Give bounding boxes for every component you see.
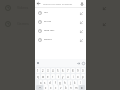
button[interactable]: q: [36, 74, 40, 79]
button[interactable]: m: [74, 85, 78, 90]
button[interactable]: Games: [0, 19, 120, 28]
button[interactable]: Shift: [36, 85, 43, 90]
button[interactable]: Settings: [81, 61, 85, 65]
staticText: p: [82, 75, 84, 79]
staticText: 1: [37, 69, 39, 73]
staticText: c: [55, 86, 57, 90]
button[interactable]: 2: [41, 68, 45, 73]
staticText: v: [60, 86, 62, 90]
button[interactable]: gamers: [35, 35, 86, 44]
button[interactable]: k: [73, 80, 77, 85]
staticText: dead cells: [44, 29, 77, 32]
button[interactable]: l: [78, 80, 82, 85]
button[interactable]: a: [39, 80, 42, 85]
staticText: a: [40, 81, 42, 85]
staticText: u: [67, 75, 69, 79]
staticText: g: [59, 81, 61, 85]
staticText: i: [73, 75, 74, 79]
button[interactable]: e: [46, 74, 50, 79]
staticText: ps2 iso: [44, 20, 77, 23]
button[interactable]: y: [61, 74, 65, 79]
button[interactable]: d: [48, 80, 52, 85]
button[interactable]: g: [58, 80, 62, 85]
staticText: o: [77, 75, 79, 79]
button[interactable]: 9: [76, 68, 80, 73]
button[interactable]: Insert query: [77, 9, 85, 17]
staticText: Videos: [17, 5, 100, 10]
button[interactable]: Insert query: [100, 20, 108, 28]
staticText: b: [65, 86, 67, 90]
staticText: 5: [57, 69, 59, 73]
button[interactable]: i: [71, 74, 75, 79]
button[interactable]: z: [44, 85, 48, 90]
button[interactable]: w: [41, 74, 45, 79]
button[interactable]: v: [59, 85, 63, 90]
button[interactable]: 7: [66, 68, 70, 73]
staticText: q: [37, 75, 39, 79]
staticText: r: [52, 75, 54, 79]
button[interactable]: Videos: [0, 3, 120, 12]
button[interactable]: Insert query: [77, 18, 85, 26]
button[interactable]: 1: [36, 68, 40, 73]
button[interactable]: dead cells: [35, 26, 86, 35]
staticText: s: [44, 81, 46, 85]
staticText: m: [75, 86, 78, 90]
staticText: gamers: [44, 38, 77, 41]
staticText: 4: [52, 69, 54, 73]
button[interactable]: Insert query: [77, 27, 85, 35]
staticText: n64: [44, 11, 77, 14]
button[interactable]: s: [43, 80, 47, 85]
button[interactable]: f: [53, 80, 57, 85]
button[interactable]: h: [63, 80, 67, 85]
button[interactable]: c: [54, 85, 58, 90]
staticText: d: [49, 81, 51, 85]
staticText: t: [58, 75, 59, 79]
staticText: Search for apps & games: [43, 2, 78, 5]
button[interactable]: 6: [61, 68, 65, 73]
staticText: 3: [47, 69, 49, 73]
staticText: 2: [42, 69, 44, 73]
staticText: 0: [82, 69, 84, 73]
button[interactable]: u: [66, 74, 70, 79]
button[interactable]: Insert query: [100, 4, 108, 12]
staticText: e: [47, 75, 49, 79]
button[interactable]: n: [69, 85, 73, 90]
staticText: w: [42, 75, 45, 79]
staticText: k: [74, 81, 76, 85]
button[interactable]: 3: [46, 68, 50, 73]
staticText: l: [80, 81, 81, 85]
button[interactable]: 4: [51, 68, 55, 73]
button[interactable]: Backspace: [79, 85, 85, 90]
staticText: 8: [72, 69, 74, 73]
staticText: 6: [62, 69, 64, 73]
staticText: x: [50, 86, 52, 90]
button[interactable]: 8: [71, 68, 75, 73]
button[interactable]: t: [56, 74, 60, 79]
staticText: j: [70, 81, 71, 85]
button[interactable]: Clipboard: [76, 61, 80, 65]
staticText: h: [64, 81, 66, 85]
button[interactable]: Voice search: [78, 0, 86, 7]
button[interactable]: x: [49, 85, 53, 90]
staticText: Games: [17, 21, 100, 26]
button[interactable]: 5: [56, 68, 60, 73]
button[interactable]: o: [76, 74, 80, 79]
button[interactable]: ps2 iso: [35, 17, 86, 26]
button[interactable]: p: [81, 74, 85, 79]
staticText: y: [62, 75, 64, 79]
staticText: 7: [67, 69, 69, 73]
button[interactable]: 0: [81, 68, 85, 73]
button[interactable]: n64: [35, 8, 86, 17]
staticText: n: [70, 86, 72, 90]
staticText: f: [55, 81, 56, 85]
staticText: 9: [77, 69, 79, 73]
staticText: z: [45, 86, 47, 90]
button[interactable]: Keyboard menu: [36, 61, 40, 65]
button[interactable]: j: [68, 80, 72, 85]
button[interactable]: r: [51, 74, 55, 79]
button[interactable]: Insert query: [77, 36, 85, 44]
button[interactable]: Back: [35, 0, 42, 7]
button[interactable]: b: [64, 85, 68, 90]
